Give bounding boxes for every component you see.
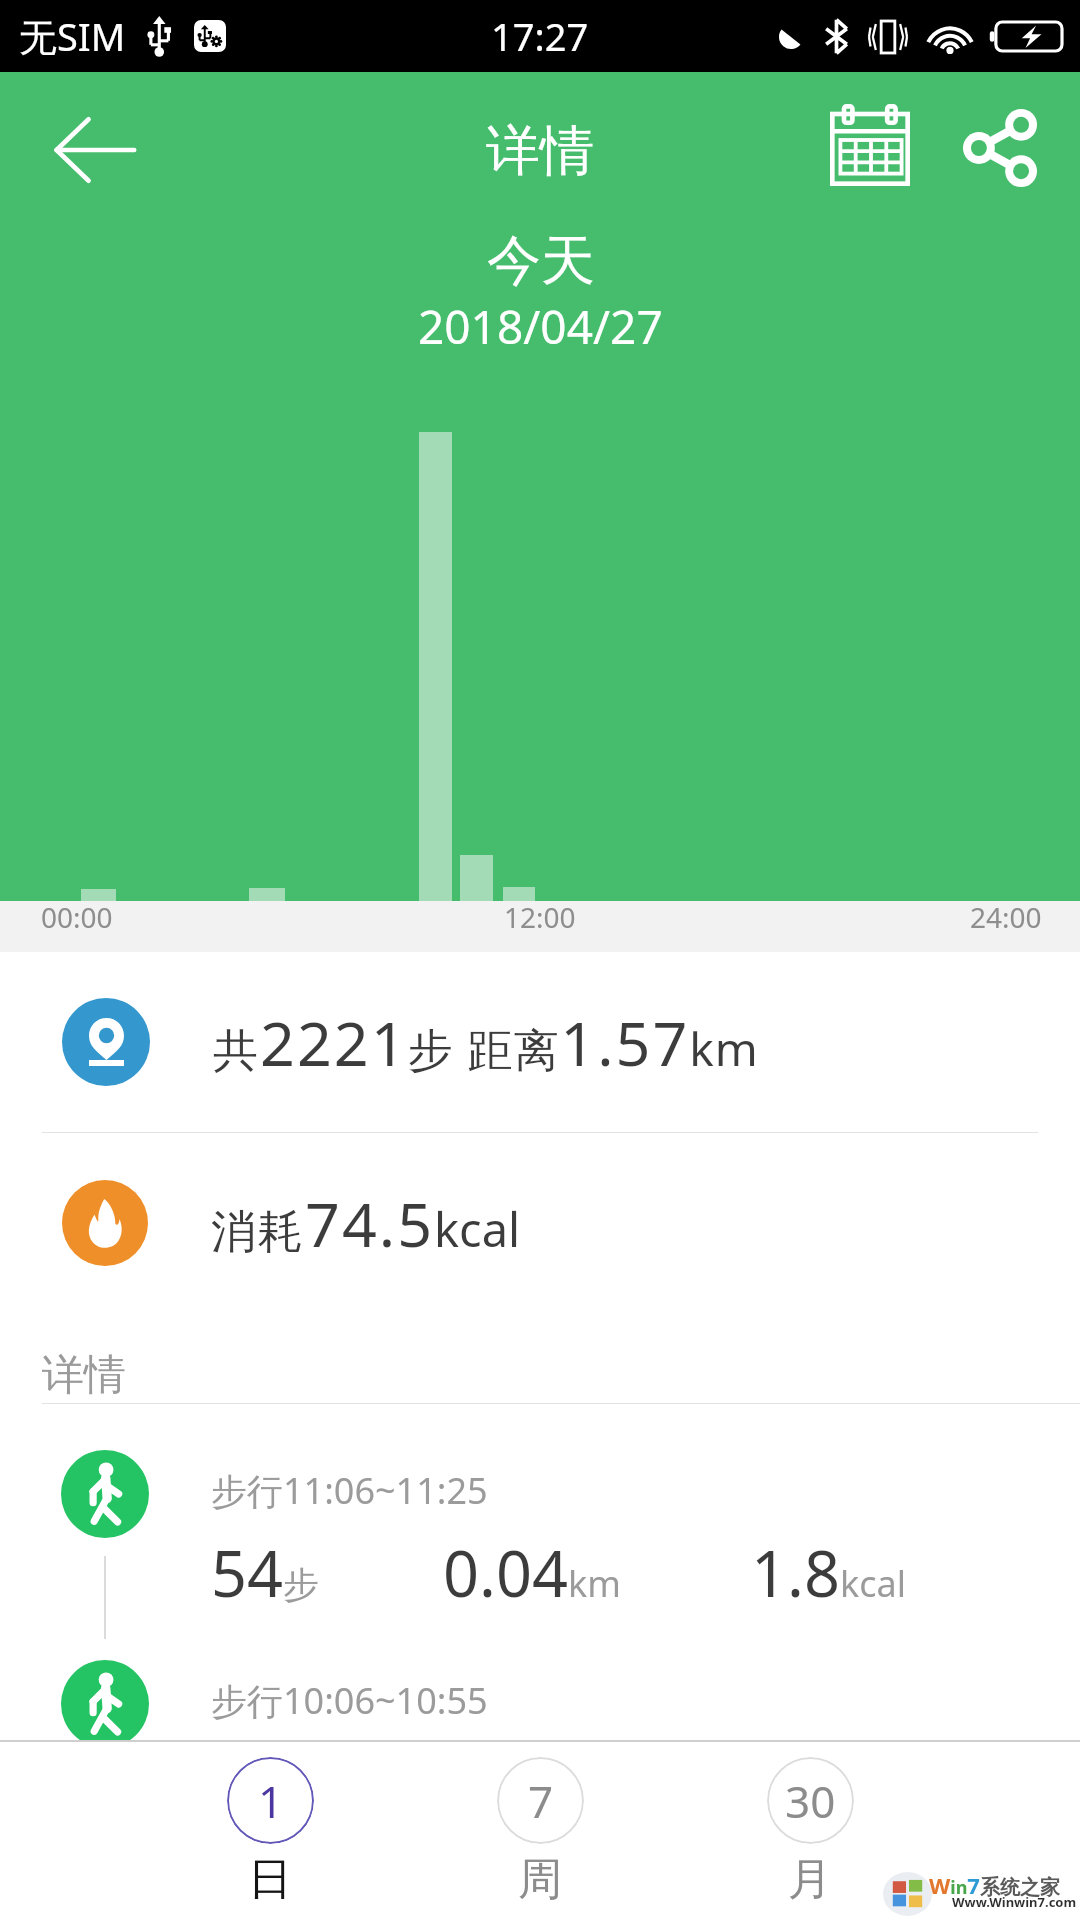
- button[interactable]: 30: [700, 1740, 920, 1907]
- staticText: 详情: [42, 1349, 126, 1402]
- button[interactable]: Back: [45, 100, 145, 200]
- staticText: 30: [785, 1771, 836, 1831]
- staticText: 详情: [486, 117, 594, 185]
- button[interactable]: 步行11:06~11:25: [0, 1450, 1080, 1616]
- staticText: 12:00: [504, 898, 576, 936]
- staticText: 54步: [211, 1530, 320, 1616]
- button[interactable]: 共2221步 距离1.57km: [0, 952, 1080, 1132]
- staticText: 周: [518, 1852, 562, 1907]
- staticText: 月: [788, 1852, 832, 1907]
- staticText: 24:00: [970, 898, 1042, 936]
- staticText: 今天: [487, 227, 595, 295]
- staticText: 2018/04/27: [418, 295, 663, 358]
- staticText: 消耗74.5kcal: [211, 1182, 521, 1265]
- staticText: 共2221步 距离1.57km: [213, 1001, 759, 1084]
- staticText: Win7系统之家: [929, 1870, 1060, 1900]
- button[interactable]: 7: [430, 1740, 650, 1907]
- staticText: 日: [248, 1852, 292, 1907]
- staticText: 1.8kcal: [751, 1530, 906, 1616]
- staticText: 00:00: [41, 898, 113, 936]
- staticText: 步行10:06~10:55: [211, 1676, 488, 1725]
- staticText: 步行11:06~11:25: [211, 1466, 488, 1515]
- button[interactable]: 步行10:06~10:55: [0, 1660, 1080, 1748]
- button[interactable]: Share: [950, 98, 1050, 198]
- staticText: Www.Winwin7.com: [952, 1893, 1077, 1911]
- staticText: 1: [258, 1771, 284, 1831]
- staticText: 无SIM: [19, 10, 126, 62]
- staticText: 0.04km: [443, 1530, 621, 1616]
- staticText: 17:27: [491, 10, 589, 62]
- button[interactable]: Calendar: [820, 96, 920, 196]
- staticText: 7: [528, 1771, 554, 1831]
- button[interactable]: 1: [160, 1740, 380, 1907]
- button[interactable]: 消耗74.5kcal: [0, 1133, 1080, 1313]
